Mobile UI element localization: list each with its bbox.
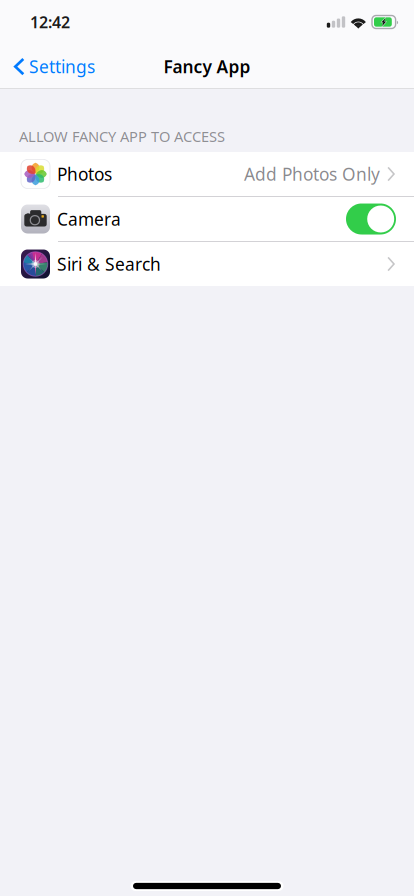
staticText: Add Photos Only [244,162,380,185]
staticText: Photos [57,162,112,185]
button[interactable]: Photos [0,152,414,196]
staticText: Siri & Search [57,252,161,275]
staticText: Camera [57,207,121,230]
staticText: Settings [29,55,95,78]
staticText: Fancy App [163,55,250,78]
staticText: 12:42 [30,11,70,33]
button[interactable]: Settings [0,47,103,86]
button[interactable]: Camera [0,197,414,241]
button[interactable]: Siri & Search [0,242,414,286]
staticText: ALLOW FANCY APP TO ACCESS [19,126,225,146]
